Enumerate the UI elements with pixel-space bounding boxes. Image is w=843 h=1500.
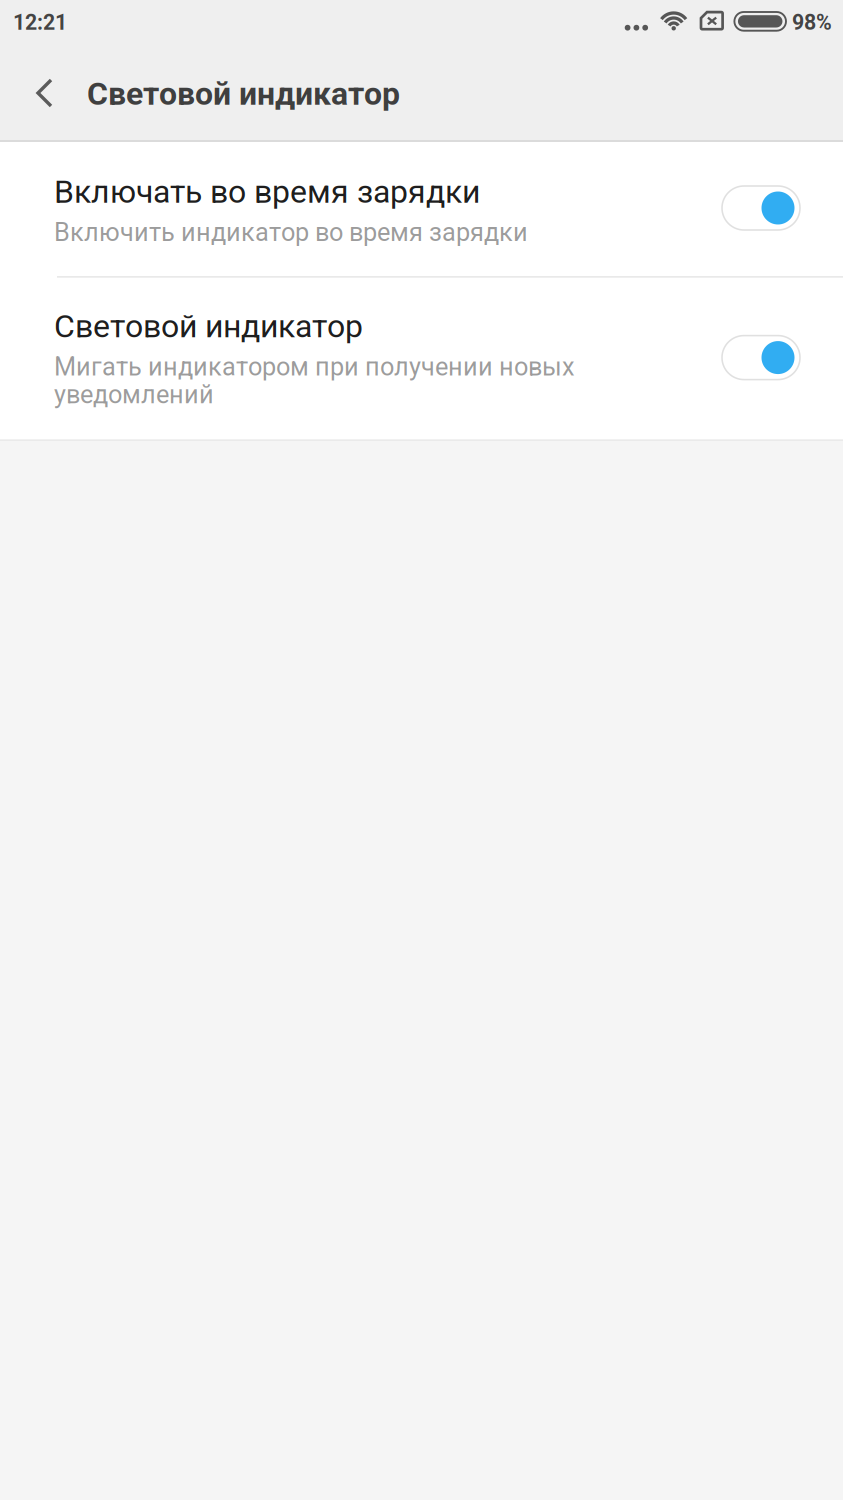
staticText: Включать во время зарядки bbox=[54, 173, 480, 210]
button[interactable]: Back bbox=[0, 44, 86, 140]
button[interactable]: Включать во время зарядки bbox=[0, 142, 843, 276]
staticText: Мигать индикатором при получении новых у… bbox=[54, 352, 575, 409]
staticText: 98% bbox=[792, 10, 832, 35]
staticText: Включить индикатор во время зарядки bbox=[54, 217, 528, 247]
staticText: Световой индикатор bbox=[87, 75, 400, 112]
staticText: Световой индикатор bbox=[54, 308, 363, 345]
button[interactable]: Световой индикатор bbox=[0, 278, 843, 439]
staticText: 12:21 bbox=[13, 10, 67, 35]
